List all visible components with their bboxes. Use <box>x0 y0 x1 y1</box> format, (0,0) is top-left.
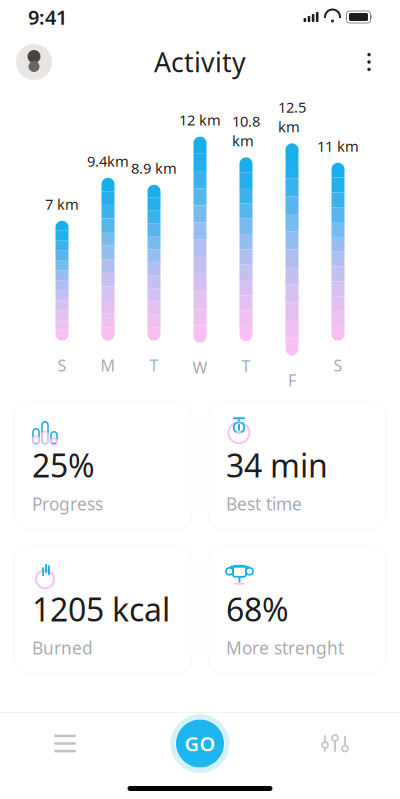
staticText: 8.9 km <box>131 158 177 178</box>
staticText: 11 km <box>317 136 359 156</box>
button[interactable]: 68% <box>208 546 386 673</box>
staticText: Progress <box>32 492 103 515</box>
staticText: 9.4km <box>87 151 129 171</box>
staticText: Activity <box>154 44 246 80</box>
staticText: 12.5 km <box>278 97 306 136</box>
staticText: 12 km <box>179 110 221 130</box>
staticText: F <box>288 369 296 391</box>
staticText: S <box>333 355 342 376</box>
button[interactable]: GO <box>176 719 224 767</box>
staticText: 68% <box>226 588 289 630</box>
button[interactable]: 1205 kcal <box>14 546 192 673</box>
staticText: M <box>100 355 115 376</box>
staticText: S <box>57 355 66 376</box>
staticText: 25% <box>32 444 95 486</box>
button[interactable]: 34 min <box>208 402 386 529</box>
staticText: 34 min <box>226 444 328 486</box>
staticText: Burned <box>32 636 93 659</box>
staticText: T <box>241 355 250 377</box>
button[interactable]: Profile <box>16 44 52 80</box>
staticText: Best time <box>226 492 302 515</box>
button[interactable]: Settings <box>290 713 380 773</box>
staticText: 7 km <box>45 194 79 214</box>
button[interactable]: 25% <box>14 402 192 529</box>
staticText: 9:41 <box>28 4 67 30</box>
staticText: 10.8 km <box>232 111 260 150</box>
staticText: W <box>192 357 207 378</box>
staticText: T <box>149 355 158 376</box>
button[interactable]: More options <box>354 44 384 80</box>
button[interactable]: Menu <box>20 713 110 773</box>
staticText: GO <box>184 730 215 757</box>
staticText: More strenght <box>226 636 344 659</box>
staticText: 1205 kcal <box>32 588 170 630</box>
